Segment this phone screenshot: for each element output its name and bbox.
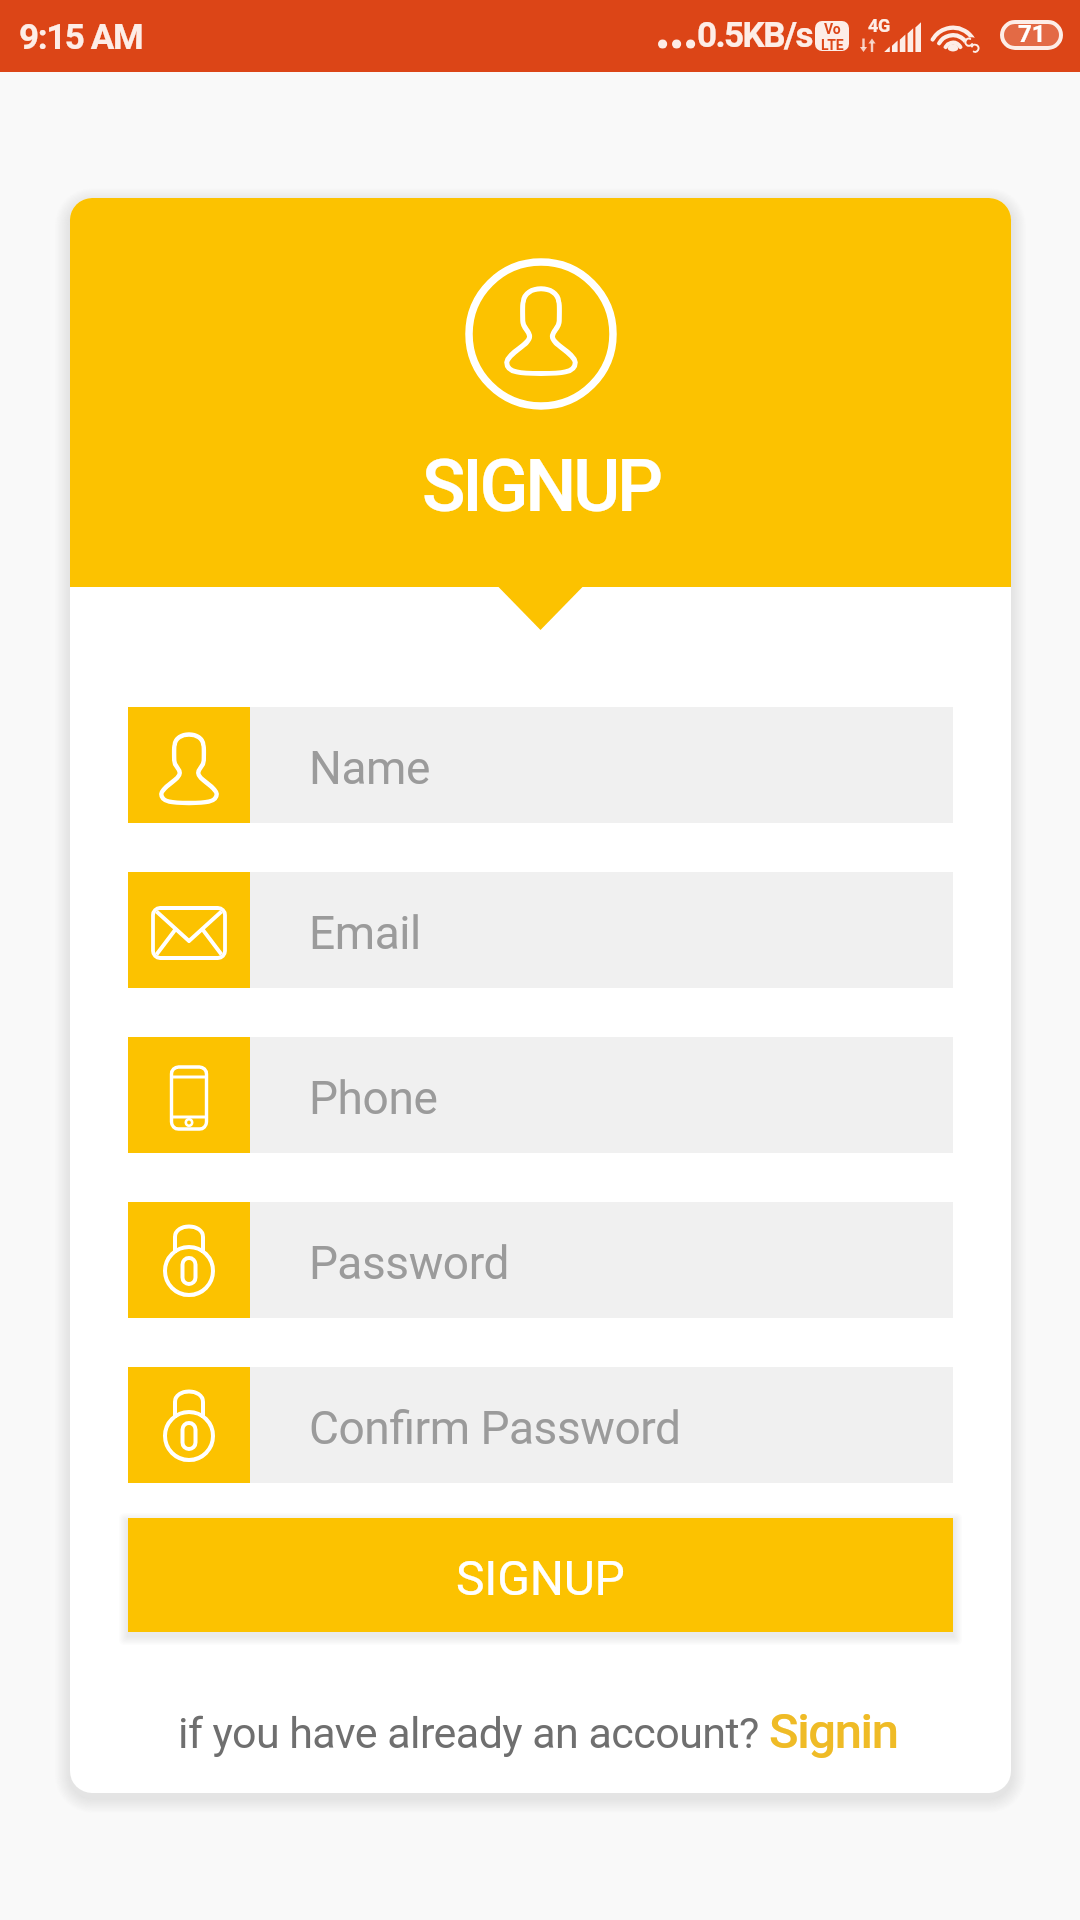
staticText: SIGNUP: [422, 444, 660, 528]
button[interactable]: Password field: [128, 1202, 953, 1318]
staticText: 71: [1018, 20, 1046, 48]
staticText: Confirm Password: [309, 1401, 681, 1455]
staticText: Name: [309, 741, 430, 795]
staticText: 9:15 AM: [19, 17, 143, 58]
button[interactable]: Email field: [128, 872, 953, 988]
staticText: Password: [309, 1236, 509, 1290]
staticText: if you have already an account?: [178, 1708, 769, 1758]
staticText: Vo: [824, 21, 841, 37]
button[interactable]: SIGNUP: [128, 1518, 953, 1632]
button[interactable]: Phone field: [128, 1037, 953, 1153]
staticText: 4G: [868, 15, 890, 36]
staticText: Email: [309, 906, 421, 960]
staticText: 0.5KB/s: [697, 15, 812, 56]
staticText: Phone: [309, 1071, 438, 1125]
button[interactable]: Confirm password field: [128, 1367, 953, 1483]
staticText: SIGNUP: [456, 1550, 625, 1606]
staticText: LTE: [821, 37, 844, 51]
staticText: Signin: [769, 1703, 898, 1760]
button[interactable]: Signin: [769, 1703, 898, 1760]
button[interactable]: Name field: [128, 707, 953, 823]
